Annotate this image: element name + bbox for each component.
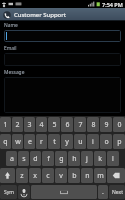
staticText: Customer Support xyxy=(14,11,66,19)
staticText: 5 xyxy=(52,120,57,130)
button[interactable]: i xyxy=(87,134,99,149)
button[interactable]: 9 xyxy=(100,117,112,132)
button[interactable]: Shift xyxy=(0,168,15,183)
button[interactable] xyxy=(4,53,121,66)
staticText: 7 xyxy=(78,120,83,130)
staticText: 6 xyxy=(65,120,70,130)
button[interactable]: l xyxy=(107,151,119,166)
staticText: s xyxy=(22,154,26,164)
button[interactable]: h xyxy=(68,151,80,166)
button[interactable]: Sym xyxy=(0,185,17,199)
button[interactable]: w xyxy=(12,134,23,149)
staticText: w xyxy=(15,137,21,147)
staticText: h xyxy=(72,154,77,164)
button[interactable]: 2 xyxy=(12,117,23,132)
staticText: Email xyxy=(4,45,17,52)
button[interactable]: e xyxy=(24,134,35,149)
button[interactable] xyxy=(4,30,121,42)
staticText: q xyxy=(3,137,8,147)
staticText: z xyxy=(20,171,24,181)
button[interactable]: Customer Support xyxy=(2,10,12,20)
button[interactable]: z xyxy=(16,168,28,183)
button[interactable]: r xyxy=(36,134,47,149)
button[interactable]: s xyxy=(18,151,29,166)
staticText: 3 xyxy=(27,120,32,130)
button[interactable]: p xyxy=(113,134,125,149)
button[interactable]: t xyxy=(48,134,60,149)
button[interactable]: Backspace xyxy=(107,168,125,183)
staticText: 9 xyxy=(104,120,109,130)
button[interactable]: Next xyxy=(109,185,125,199)
staticText: 1 xyxy=(3,120,8,130)
staticText: 8 xyxy=(91,120,96,130)
staticText: f xyxy=(47,154,50,164)
button[interactable]: m xyxy=(94,168,106,183)
staticText: m xyxy=(97,171,104,181)
staticText: . xyxy=(102,187,104,197)
button[interactable]: 1 xyxy=(0,117,11,132)
button[interactable]: u xyxy=(74,134,86,149)
staticText: Name xyxy=(4,22,18,29)
staticText: v xyxy=(59,171,63,181)
staticText: t xyxy=(53,137,56,147)
button[interactable]: y xyxy=(61,134,73,149)
staticText: o xyxy=(104,137,109,147)
button[interactable]: Voice input xyxy=(18,185,30,199)
staticText: c xyxy=(46,171,50,181)
button[interactable]: v xyxy=(55,168,67,183)
staticText: 7:54 PM xyxy=(102,1,123,8)
button[interactable]: a xyxy=(6,151,17,166)
button[interactable]: 5 xyxy=(48,117,60,132)
staticText: Sym xyxy=(4,189,14,196)
staticText: 2 xyxy=(15,120,20,130)
staticText: 0 xyxy=(117,120,122,130)
button[interactable]: k xyxy=(94,151,106,166)
staticText: x xyxy=(33,171,37,181)
button[interactable]: 3 xyxy=(24,117,35,132)
button[interactable]: g xyxy=(55,151,67,166)
button[interactable]: 4 xyxy=(36,117,47,132)
staticText: b xyxy=(72,171,77,181)
button[interactable]: n xyxy=(81,168,93,183)
staticText: n xyxy=(85,171,90,181)
staticText: d xyxy=(33,154,38,164)
staticText: 4 xyxy=(39,120,44,130)
button[interactable]: b xyxy=(68,168,80,183)
staticText: r xyxy=(40,137,43,147)
button[interactable]: 8 xyxy=(87,117,99,132)
button[interactable]: f xyxy=(42,151,54,166)
staticText: u xyxy=(78,137,83,147)
staticText: Next xyxy=(112,189,123,196)
staticText: k xyxy=(98,154,102,164)
staticText: a xyxy=(10,154,14,164)
staticText: y xyxy=(65,137,69,147)
button[interactable]: c xyxy=(42,168,54,183)
staticText: l xyxy=(112,154,114,164)
button[interactable]: 6 xyxy=(61,117,73,132)
button[interactable]: 7 xyxy=(74,117,86,132)
staticText: g xyxy=(59,154,64,164)
staticText: p xyxy=(117,137,122,147)
button[interactable]: Space xyxy=(31,185,97,199)
button[interactable]: x xyxy=(29,168,41,183)
staticText: j xyxy=(86,154,88,164)
button[interactable]: o xyxy=(100,134,112,149)
staticText: e xyxy=(28,137,32,147)
staticText: Message xyxy=(4,69,25,76)
button[interactable]: . xyxy=(98,185,108,199)
staticText: i xyxy=(92,137,94,147)
button[interactable]: q xyxy=(0,134,11,149)
button[interactable]: d xyxy=(30,151,41,166)
button[interactable]: 0 xyxy=(113,117,125,132)
button[interactable]: j xyxy=(81,151,93,166)
button[interactable] xyxy=(4,77,121,113)
